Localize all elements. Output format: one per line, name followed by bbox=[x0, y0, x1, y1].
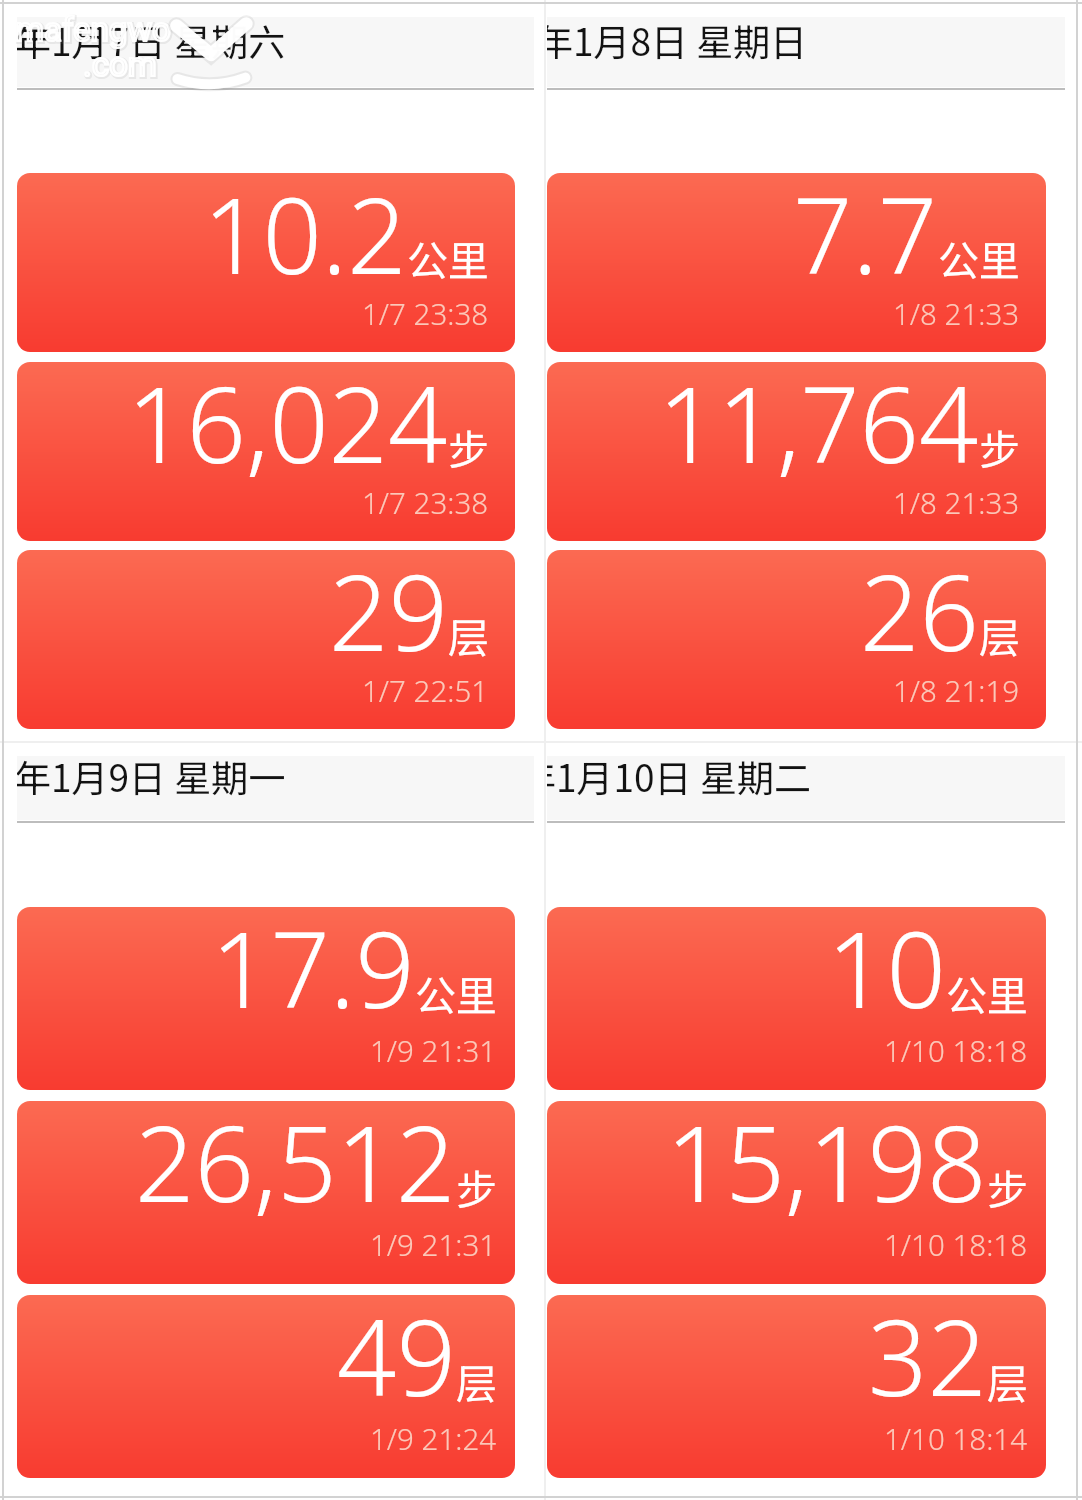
staticText: 1/8 21:33 bbox=[893, 482, 1020, 519]
staticText: 年1月8日 星期日 bbox=[547, 17, 808, 67]
staticText: 步 bbox=[987, 1157, 1028, 1216]
staticText: 10.2 bbox=[203, 173, 407, 305]
button[interactable]: 7.7 bbox=[547, 173, 1046, 352]
staticText: 1/9 21:31 bbox=[370, 1224, 497, 1264]
button[interactable]: 49 bbox=[17, 1295, 515, 1478]
staticText: 年1月7日 星期六 bbox=[17, 17, 286, 67]
staticText: 1/10 18:14 bbox=[884, 1418, 1028, 1458]
staticText: 10 bbox=[827, 907, 946, 1039]
staticText: 年1月10日 星期二 bbox=[547, 756, 811, 803]
button[interactable]: 10.2 bbox=[17, 173, 515, 352]
other: mafengwo logo bbox=[171, 16, 251, 86]
button[interactable]: 26 bbox=[547, 550, 1046, 729]
staticText: 层 bbox=[456, 1351, 497, 1410]
staticText: 1/8 21:33 bbox=[893, 293, 1020, 330]
staticText: 步 bbox=[456, 1157, 497, 1216]
button[interactable]: 11,764 bbox=[547, 362, 1046, 541]
staticText: 公里 bbox=[938, 228, 1020, 287]
staticText: 公里 bbox=[415, 963, 497, 1022]
button[interactable]: 年1月7日 星期六 bbox=[17, 17, 534, 87]
staticText: mafengwo bbox=[16, 11, 172, 50]
staticText: 16,024 bbox=[127, 362, 448, 494]
staticText: 15,198 bbox=[666, 1101, 987, 1233]
button[interactable]: 29 bbox=[17, 550, 515, 729]
button[interactable]: 10 bbox=[547, 907, 1046, 1090]
staticText: 年1月9日 星期一 bbox=[17, 756, 286, 803]
staticText: 1/7 23:38 bbox=[362, 293, 489, 330]
staticText: 步 bbox=[979, 417, 1020, 476]
button[interactable]: 15,198 bbox=[547, 1101, 1046, 1284]
staticText: 1/9 21:24 bbox=[370, 1418, 497, 1458]
staticText: 11,764 bbox=[658, 362, 979, 494]
button[interactable]: 年1月10日 星期二 bbox=[547, 756, 1065, 820]
staticText: 1/7 23:38 bbox=[362, 482, 489, 519]
staticText: .com bbox=[84, 46, 158, 85]
staticText: 26,512 bbox=[135, 1101, 456, 1233]
staticText: 层 bbox=[979, 605, 1020, 664]
staticText: 49 bbox=[337, 1295, 456, 1427]
staticText: mafengwo bbox=[15, 10, 171, 49]
button[interactable]: 16,024 bbox=[17, 362, 515, 541]
staticText: 公里 bbox=[407, 228, 489, 287]
staticText: .com bbox=[83, 45, 157, 84]
staticText: 1/7 22:51 bbox=[362, 670, 489, 707]
staticText: 26 bbox=[860, 550, 979, 682]
staticText: 步 bbox=[448, 417, 489, 476]
button[interactable]: 年1月8日 星期日 bbox=[547, 17, 1065, 87]
staticText: 29 bbox=[329, 550, 448, 682]
staticText: 1/10 18:18 bbox=[884, 1224, 1028, 1264]
staticText: 17.9 bbox=[211, 907, 415, 1039]
staticText: 公里 bbox=[946, 963, 1028, 1022]
staticText: 层 bbox=[987, 1351, 1028, 1410]
staticText: 层 bbox=[448, 605, 489, 664]
button[interactable]: 年1月9日 星期一 bbox=[17, 756, 534, 820]
staticText: 7.7 bbox=[793, 173, 938, 305]
staticText: 32 bbox=[868, 1295, 987, 1427]
button[interactable]: 32 bbox=[547, 1295, 1046, 1478]
staticText: 1/8 21:19 bbox=[893, 670, 1020, 707]
button[interactable]: 17.9 bbox=[17, 907, 515, 1090]
staticText: 1/9 21:31 bbox=[370, 1030, 497, 1070]
button[interactable]: 26,512 bbox=[17, 1101, 515, 1284]
staticText: 1/10 18:18 bbox=[884, 1030, 1028, 1070]
